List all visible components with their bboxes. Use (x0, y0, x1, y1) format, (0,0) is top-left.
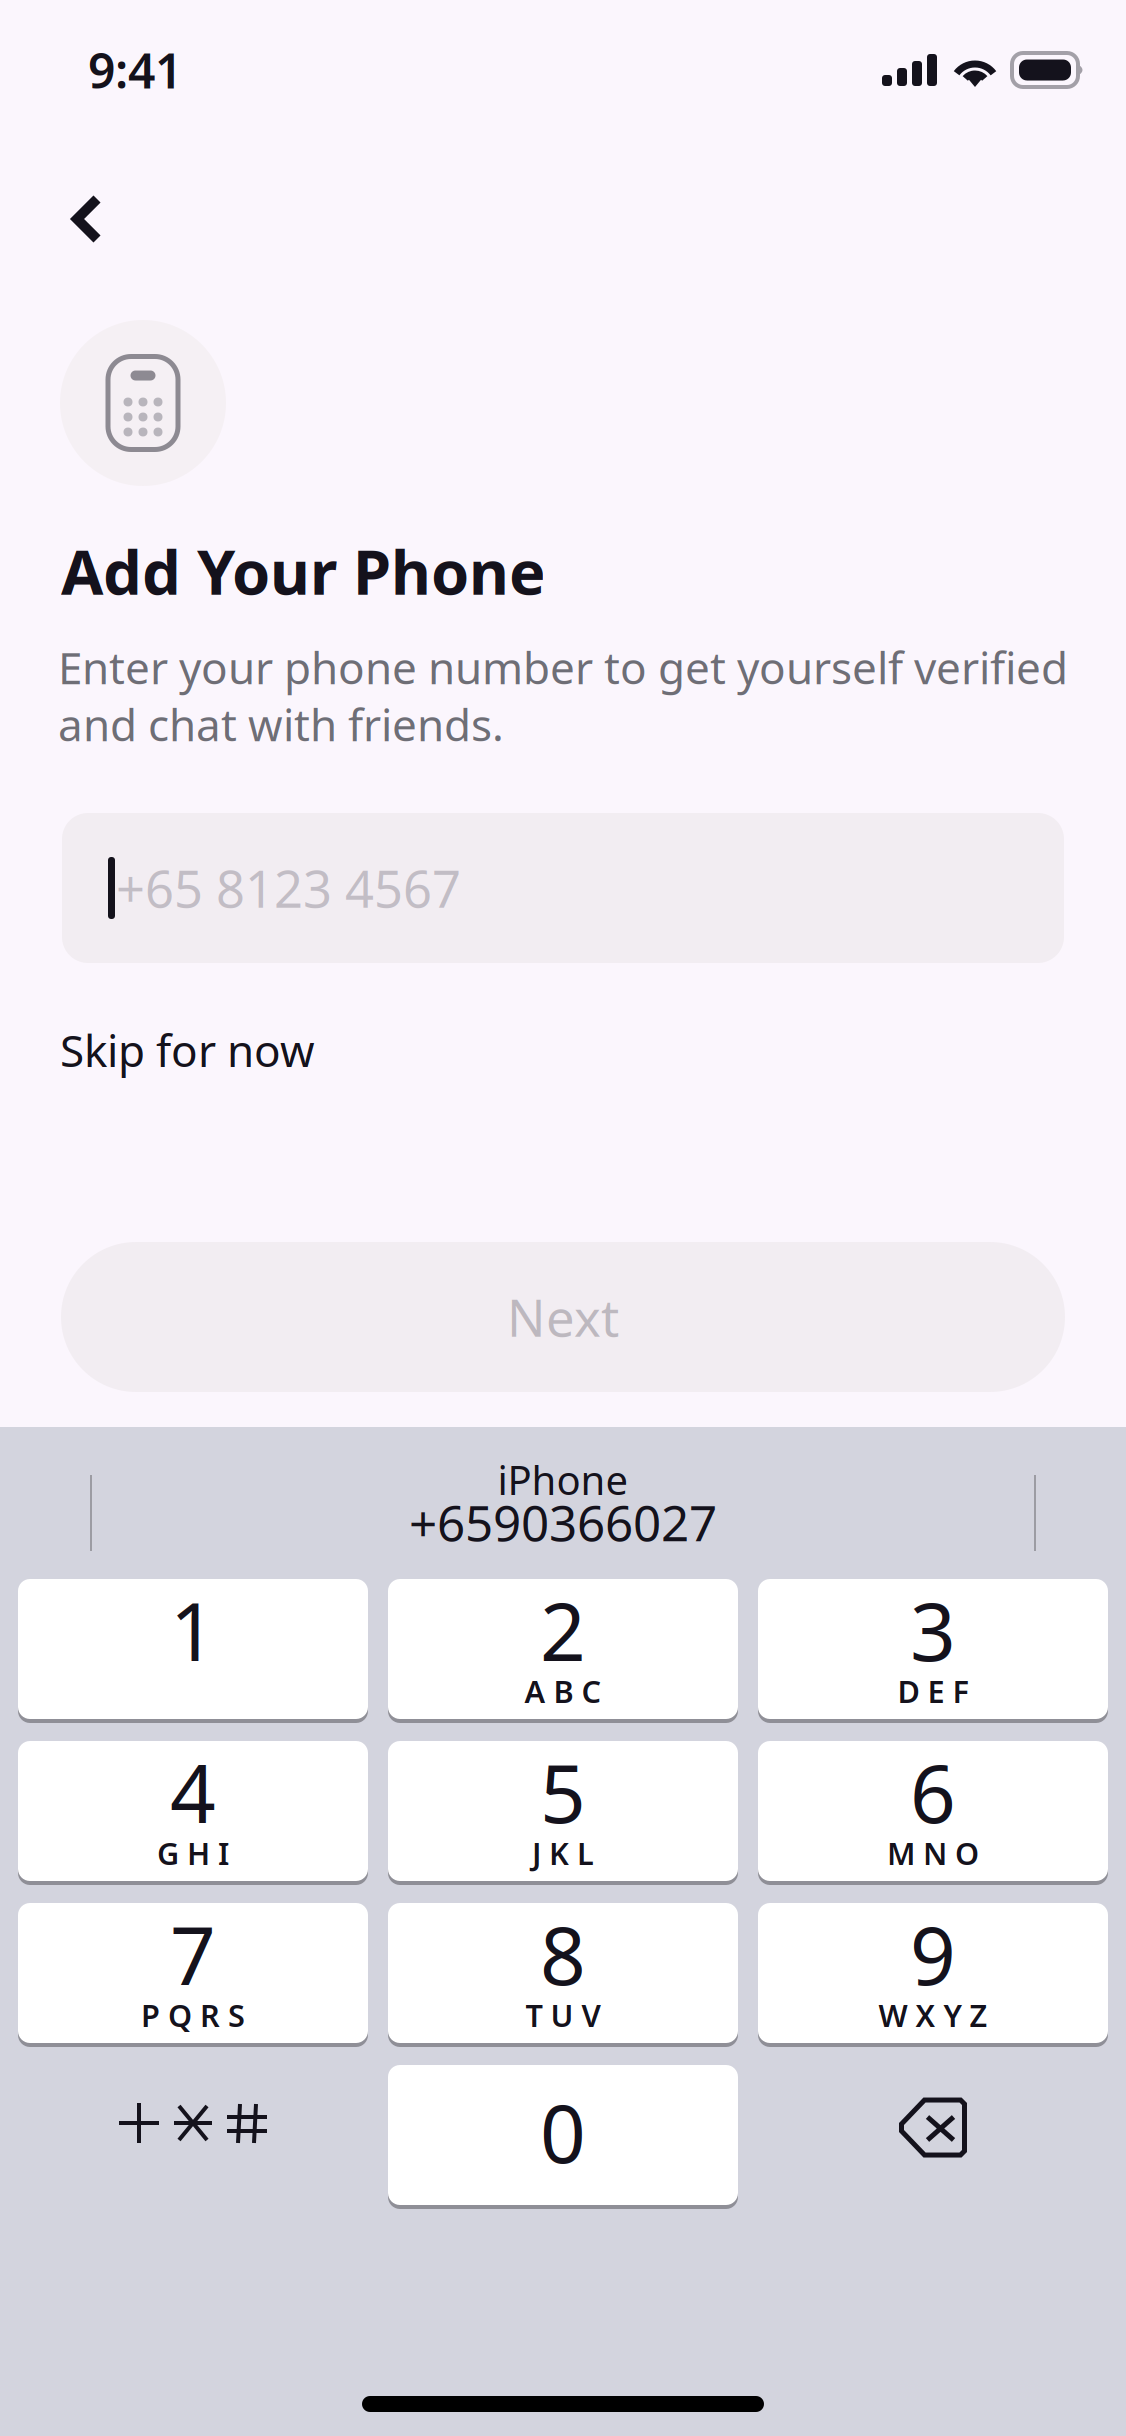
button[interactable]: Next (61, 1242, 1065, 1392)
staticText: +65 8123 4567 (116, 854, 461, 922)
button[interactable]: 7 (18, 1903, 368, 2047)
button[interactable]: 2 (388, 1579, 738, 1723)
staticText: D E F (897, 1671, 968, 1711)
staticText: 4 (170, 1739, 216, 1845)
button[interactable]: Symbols (18, 2065, 368, 2209)
staticText: P Q R S (141, 1995, 245, 2035)
staticText: 5 (540, 1739, 586, 1845)
staticText: and chat with friends. (58, 695, 504, 753)
button[interactable]: 0 (388, 2065, 738, 2209)
staticText: T U V (525, 1995, 600, 2035)
button[interactable]: 1 (18, 1579, 368, 1723)
staticText: W X Y Z (878, 1995, 987, 2035)
staticText: Enter your phone number to get yourself … (58, 638, 1068, 696)
staticText: +6590366027 (409, 1489, 717, 1555)
staticText: 8 (540, 1901, 586, 2007)
staticText: iPhone (497, 1453, 628, 1506)
button[interactable]: Delete (758, 2065, 1108, 2209)
staticText: J K L (532, 1833, 594, 1873)
button[interactable]: 3 (758, 1579, 1108, 1723)
staticText: 7 (170, 1901, 216, 2007)
staticText: A B C (524, 1671, 601, 1711)
button[interactable]: 4 (18, 1741, 368, 1885)
button[interactable]: Skip for now (60, 1016, 360, 1084)
button[interactable]: 8 (388, 1903, 738, 2047)
staticText: 3 (910, 1577, 956, 1683)
staticText: 2 (540, 1577, 586, 1683)
staticText: 6 (910, 1739, 956, 1845)
staticText: Add Your Phone (61, 530, 546, 612)
staticText: M N O (887, 1833, 979, 1873)
staticText: Next (507, 1283, 619, 1351)
button[interactable]: 6 (758, 1741, 1108, 1885)
staticText: 9:41 (88, 38, 182, 102)
staticText: 9 (910, 1901, 956, 2007)
staticText: Skip for now (60, 1021, 315, 1079)
button[interactable]: 9 (758, 1903, 1108, 2047)
staticText: 1 (170, 1577, 216, 1683)
button[interactable]: 5 (388, 1741, 738, 1885)
staticText: 0 (540, 2079, 586, 2185)
button[interactable]: Back (46, 176, 128, 262)
staticText: G H I (157, 1833, 229, 1873)
